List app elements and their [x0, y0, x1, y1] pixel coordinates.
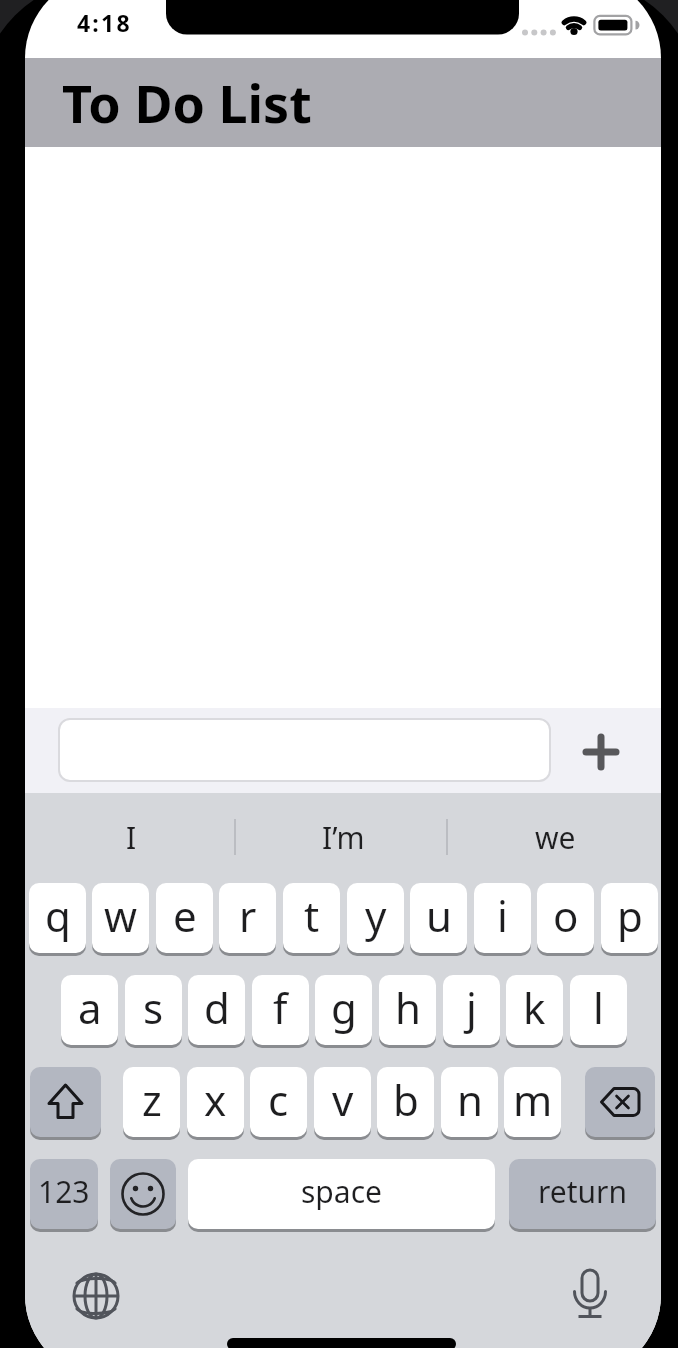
staticText: r	[239, 887, 257, 944]
staticText: z	[142, 1071, 162, 1128]
button[interactable]: v	[314, 1067, 371, 1137]
staticText: I	[126, 817, 137, 858]
staticText: q	[45, 887, 71, 944]
staticText: 123	[38, 1171, 90, 1212]
button[interactable]: m	[504, 1067, 561, 1137]
staticText: t	[304, 887, 320, 944]
button[interactable]: w	[92, 883, 149, 953]
button[interactable]: z	[123, 1067, 180, 1137]
button[interactable]: k	[506, 975, 563, 1045]
staticText: n	[457, 1071, 483, 1128]
button[interactable]: f	[252, 975, 309, 1045]
staticText: g	[331, 979, 357, 1036]
button[interactable]	[110, 1159, 176, 1229]
button[interactable]: I’m	[237, 793, 449, 881]
button[interactable]: we	[449, 793, 661, 881]
staticText: v	[332, 1071, 354, 1128]
staticText: b	[393, 1071, 419, 1128]
staticText: y	[365, 887, 387, 944]
button[interactable]: g	[315, 975, 372, 1045]
button[interactable]	[585, 1067, 655, 1137]
button[interactable]: j	[443, 975, 500, 1045]
staticText: return	[538, 1171, 628, 1212]
staticText: we	[535, 817, 576, 858]
staticText: a	[78, 979, 102, 1036]
button[interactable]: x	[187, 1067, 244, 1137]
button[interactable]: n	[441, 1067, 498, 1137]
button[interactable]: return	[509, 1159, 656, 1229]
button[interactable]: space	[188, 1159, 495, 1229]
staticText: x	[204, 1071, 227, 1128]
button[interactable]: o	[537, 883, 594, 953]
button[interactable]: l	[570, 975, 627, 1045]
button[interactable]	[571, 722, 631, 782]
staticText: i	[497, 887, 508, 944]
button[interactable]	[59, 719, 550, 781]
staticText: k	[523, 979, 546, 1036]
staticText: 4:18	[77, 7, 132, 38]
staticText: p	[617, 887, 643, 944]
staticText: f	[273, 979, 288, 1036]
button[interactable]: a	[61, 975, 118, 1045]
staticText: I’m	[322, 817, 365, 858]
staticText: s	[143, 979, 164, 1036]
button[interactable]: h	[379, 975, 436, 1045]
button[interactable]: r	[219, 883, 276, 953]
staticText: w	[104, 887, 138, 944]
staticText: j	[466, 979, 477, 1036]
button[interactable]: p	[601, 883, 658, 953]
button[interactable]: y	[347, 883, 404, 953]
staticText: m	[513, 1071, 553, 1128]
staticText: c	[268, 1071, 289, 1128]
button[interactable]: q	[29, 883, 86, 953]
button[interactable]	[30, 1067, 101, 1137]
button[interactable]: 123	[30, 1159, 98, 1229]
button[interactable]: e	[156, 883, 213, 953]
button[interactable]: u	[410, 883, 467, 953]
staticText: To Do List	[62, 67, 312, 138]
staticText: space	[301, 1171, 382, 1212]
button[interactable]	[564, 1266, 616, 1322]
staticText: e	[173, 887, 197, 944]
staticText: d	[204, 979, 230, 1036]
staticText: h	[395, 979, 421, 1036]
button[interactable]: s	[125, 975, 182, 1045]
staticText: o	[553, 887, 579, 944]
button[interactable]: b	[377, 1067, 434, 1137]
staticText: l	[593, 979, 604, 1036]
button[interactable]: t	[283, 883, 340, 953]
button[interactable]: c	[250, 1067, 307, 1137]
button[interactable]: i	[474, 883, 531, 953]
staticText: u	[426, 887, 452, 944]
button[interactable]: d	[188, 975, 245, 1045]
button[interactable]: I	[25, 793, 237, 881]
button[interactable]	[70, 1270, 122, 1322]
